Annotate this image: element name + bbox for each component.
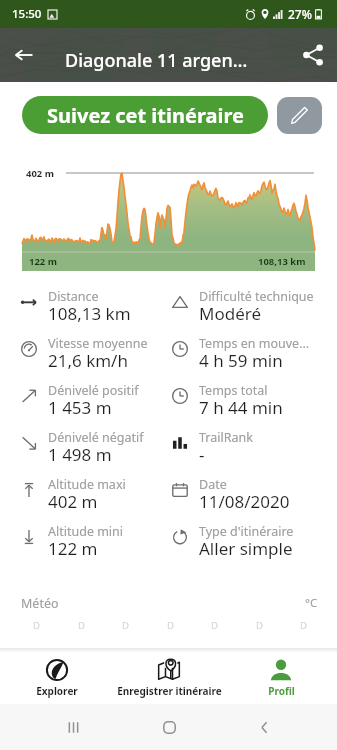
staticText: 108,13 km bbox=[258, 255, 306, 268]
button[interactable]: Profil bbox=[225, 652, 337, 704]
staticText: 402 m bbox=[26, 167, 55, 180]
staticText: 1 498 m bbox=[48, 443, 112, 466]
staticText: TrailRank bbox=[199, 429, 253, 446]
staticText: Diagonale 11 argen… bbox=[65, 48, 248, 73]
button[interactable]: Share bbox=[289, 28, 337, 82]
staticText: Altitude maxi bbox=[48, 476, 126, 493]
staticText: Suivez cet itinéraire bbox=[47, 102, 244, 129]
staticText: 27% bbox=[288, 6, 312, 22]
staticText: Difficulté technique bbox=[199, 288, 314, 305]
button[interactable]: Date bbox=[151, 473, 337, 520]
staticText: Modéré bbox=[199, 302, 262, 325]
staticText: 11/08/2020 bbox=[199, 490, 290, 513]
staticText: Altitude mini bbox=[48, 523, 124, 540]
staticText: D bbox=[300, 619, 307, 632]
staticText: Profil bbox=[268, 684, 295, 698]
staticText: Explorer bbox=[36, 684, 78, 698]
button[interactable]: Back bbox=[0, 28, 48, 82]
button[interactable]: Distance bbox=[0, 285, 151, 332]
staticText: Aller simple bbox=[199, 537, 293, 560]
staticText: Dénivelé positif bbox=[48, 382, 139, 399]
staticText: 21,6 km/h bbox=[48, 349, 128, 372]
staticText: Vitesse moyenne bbox=[48, 335, 148, 352]
staticText: D bbox=[33, 619, 40, 632]
button[interactable]: Recents bbox=[51, 705, 95, 749]
staticText: Date bbox=[199, 476, 227, 493]
button[interactable]: Dénivelé négatif bbox=[0, 426, 151, 473]
button[interactable]: Altitude mini bbox=[0, 520, 151, 567]
staticText: D bbox=[78, 619, 85, 632]
button[interactable]: Altitude maxi bbox=[0, 473, 151, 520]
button[interactable]: Home bbox=[147, 705, 191, 749]
button[interactable]: Vitesse moyenne bbox=[0, 332, 151, 379]
button[interactable]: Temps total bbox=[151, 379, 337, 426]
staticText: D bbox=[256, 619, 263, 632]
staticText: Temps en mouve… bbox=[199, 335, 310, 352]
button[interactable]: Edit bbox=[277, 97, 322, 134]
staticText: Distance bbox=[48, 288, 99, 305]
staticText: Météo bbox=[21, 595, 59, 612]
staticText: Dénivelé négatif bbox=[48, 429, 144, 446]
staticText: °C bbox=[305, 595, 318, 611]
button[interactable]: Difficulté technique bbox=[151, 285, 337, 332]
button[interactable]: Back bbox=[242, 705, 286, 749]
staticText: Enregistrer itinéraire bbox=[117, 684, 222, 698]
staticText: 402 m bbox=[48, 490, 98, 513]
button[interactable]: Dénivelé positif bbox=[0, 379, 151, 426]
button[interactable]: Temps en mouve… bbox=[151, 332, 337, 379]
staticText: D bbox=[122, 619, 129, 632]
staticText: 122 m bbox=[29, 255, 58, 268]
button[interactable]: Suivez cet itinéraire bbox=[22, 96, 268, 134]
staticText: 4 h 59 min bbox=[199, 349, 283, 372]
staticText: Type d'itinéraire bbox=[199, 523, 294, 540]
staticText: D bbox=[167, 619, 174, 632]
staticText: D bbox=[211, 619, 218, 632]
button[interactable]: Explorer bbox=[0, 652, 113, 704]
button[interactable]: Type d'itinéraire bbox=[151, 520, 337, 567]
staticText: 108,13 km bbox=[48, 302, 131, 325]
staticText: 15:50 bbox=[12, 6, 42, 22]
staticText: 1 453 m bbox=[48, 396, 112, 419]
staticText: 7 h 44 min bbox=[199, 396, 283, 419]
button[interactable]: TrailRank bbox=[151, 426, 337, 473]
staticText: - bbox=[199, 443, 205, 466]
staticText: 122 m bbox=[48, 537, 98, 560]
staticText: Temps total bbox=[199, 382, 268, 399]
button[interactable]: Enregistrer itinéraire bbox=[113, 652, 225, 704]
